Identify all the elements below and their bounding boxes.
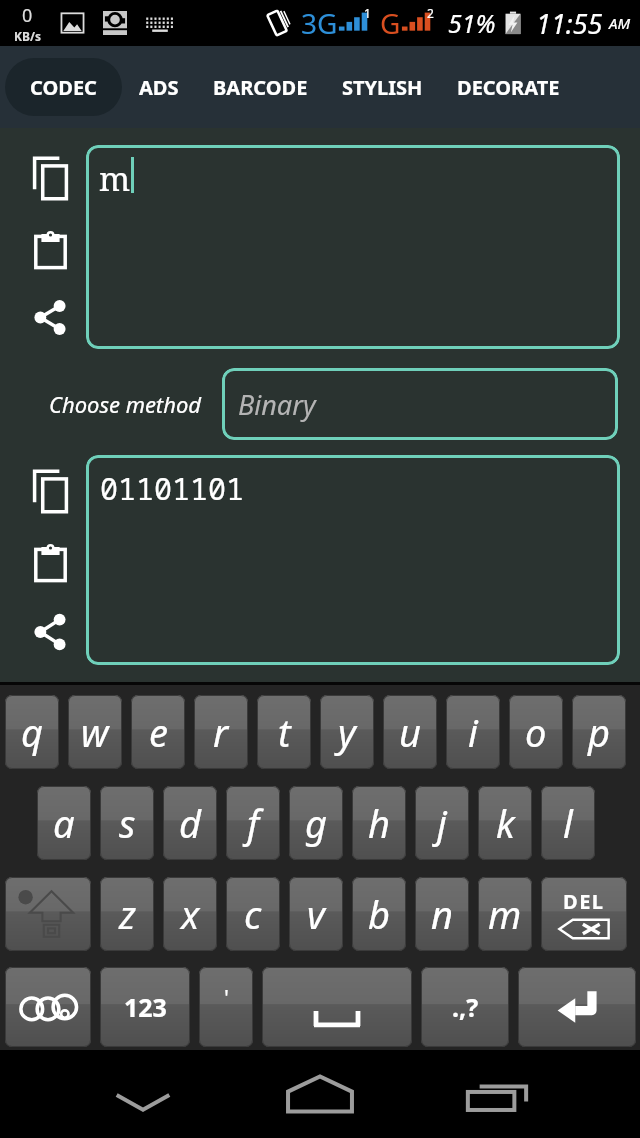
staticText: w xyxy=(81,706,109,758)
staticText: 2 xyxy=(427,5,434,21)
button[interactable]: Home xyxy=(286,1050,354,1138)
button[interactable]: Paste xyxy=(26,539,74,587)
button[interactable]: h xyxy=(352,786,406,860)
button[interactable]: a xyxy=(37,786,91,860)
button[interactable]: 123 xyxy=(100,967,190,1047)
staticText: STYLISH xyxy=(342,74,423,101)
staticText: 3G xyxy=(301,4,338,42)
staticText: f xyxy=(247,797,260,849)
staticText: G xyxy=(380,4,401,42)
staticText: k xyxy=(496,797,515,849)
button[interactable]: CODEC xyxy=(5,58,122,116)
button[interactable]: w xyxy=(68,695,122,769)
button[interactable]: q xyxy=(5,695,59,769)
button[interactable]: Binary xyxy=(222,368,618,440)
button[interactable]: Copy xyxy=(26,467,74,515)
staticText: a xyxy=(53,797,75,849)
button[interactable]: v xyxy=(289,877,343,951)
staticText: l xyxy=(563,797,573,849)
staticText: KB/s xyxy=(14,28,41,44)
staticText: g xyxy=(305,797,328,849)
button[interactable]: t xyxy=(257,695,311,769)
button[interactable]: Change language xyxy=(5,967,91,1047)
button[interactable]: Copy xyxy=(26,154,74,202)
staticText: t xyxy=(278,706,291,758)
button[interactable]: r xyxy=(194,695,248,769)
button[interactable]: o xyxy=(509,695,563,769)
button[interactable]: l xyxy=(541,786,595,860)
button[interactable]: Enter xyxy=(518,967,636,1047)
staticText: 0 xyxy=(22,3,33,28)
staticText: Choose method xyxy=(49,389,202,419)
staticText: CODEC xyxy=(30,74,97,101)
staticText: m xyxy=(488,888,522,940)
staticText: s xyxy=(119,797,136,849)
button[interactable]: j xyxy=(415,786,469,860)
button[interactable]: DECORATE xyxy=(440,58,577,116)
staticText: b xyxy=(368,888,391,940)
staticText: z xyxy=(119,888,136,940)
staticText: BARCODE xyxy=(213,74,308,101)
staticText: p xyxy=(588,706,611,758)
button[interactable]: y xyxy=(320,695,374,769)
staticText: m xyxy=(99,156,131,201)
button[interactable]: 01101101 xyxy=(86,455,620,665)
staticText: i xyxy=(468,706,478,758)
button[interactable]: Shift xyxy=(5,877,91,951)
staticText: d xyxy=(179,797,202,849)
staticText: DEL xyxy=(563,888,605,915)
staticText: o xyxy=(525,706,547,758)
button[interactable]: k xyxy=(478,786,532,860)
button[interactable]: b xyxy=(352,877,406,951)
button[interactable]: i xyxy=(446,695,500,769)
button[interactable]: Recent apps xyxy=(354,1050,640,1138)
staticText: 123 xyxy=(124,990,167,1024)
button[interactable]: m xyxy=(86,145,620,349)
button[interactable]: BARCODE xyxy=(196,58,325,116)
button[interactable]: Space xyxy=(262,967,412,1047)
button[interactable]: Share xyxy=(26,299,74,336)
button[interactable]: z xyxy=(100,877,154,951)
staticText: 1 xyxy=(364,5,371,21)
button[interactable]: STYLISH xyxy=(325,58,440,116)
button[interactable]: Share xyxy=(26,612,74,652)
staticText: e xyxy=(149,706,168,758)
button[interactable]: Apostrophe xyxy=(199,967,253,1047)
button[interactable]: Back xyxy=(0,1050,286,1138)
staticText: h xyxy=(368,797,391,849)
button[interactable]: s xyxy=(100,786,154,860)
button[interactable]: m xyxy=(478,877,532,951)
staticText: ADS xyxy=(139,74,179,101)
staticText: r xyxy=(213,706,229,758)
button[interactable]: x xyxy=(163,877,217,951)
staticText: n xyxy=(431,888,454,940)
button[interactable]: Paste xyxy=(26,226,74,274)
button[interactable]: c xyxy=(226,877,280,951)
button[interactable]: ADS xyxy=(122,58,196,116)
staticText: c xyxy=(244,888,262,940)
staticText: j xyxy=(437,797,447,849)
staticText: x xyxy=(181,888,200,940)
staticText: AM xyxy=(609,13,631,33)
button[interactable]: f xyxy=(226,786,280,860)
staticText: u xyxy=(399,706,422,758)
staticText: v xyxy=(307,888,325,940)
button[interactable]: .,? xyxy=(421,967,509,1047)
button[interactable]: n xyxy=(415,877,469,951)
staticText: DECORATE xyxy=(457,74,560,101)
button[interactable]: Delete xyxy=(541,877,627,951)
staticText: 11:55 xyxy=(536,5,603,42)
button[interactable]: u xyxy=(383,695,437,769)
staticText: Binary xyxy=(238,386,316,423)
staticText: ' xyxy=(224,982,229,1012)
staticText: q xyxy=(21,706,44,758)
staticText: 51% xyxy=(448,6,496,40)
staticText: y xyxy=(338,706,356,758)
button[interactable]: d xyxy=(163,786,217,860)
staticText: .,? xyxy=(452,990,479,1024)
button[interactable]: e xyxy=(131,695,185,769)
button[interactable]: g xyxy=(289,786,343,860)
button[interactable]: p xyxy=(572,695,626,769)
staticText: 01101101 xyxy=(100,468,244,509)
